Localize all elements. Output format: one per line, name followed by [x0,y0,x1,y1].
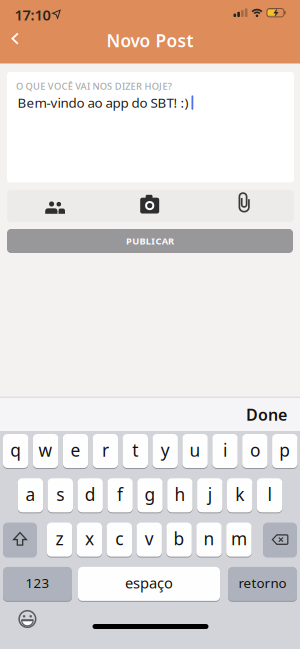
button[interactable]: v [136,522,162,557]
button[interactable]: Delete [263,522,297,557]
button[interactable]: b [166,522,192,557]
button[interactable]: m [226,522,252,557]
staticText: u [190,438,201,461]
button[interactable]: y [152,433,178,468]
button[interactable]: z [47,522,72,557]
staticText: Done [246,404,287,425]
button[interactable]: w [33,433,58,468]
staticText: h [174,483,185,506]
staticText: l [268,483,272,506]
button[interactable]: espaço [78,566,220,601]
staticText: O QUE VOCÊ VAI NOS DIZER HOJE? [16,80,172,92]
staticText: m [231,527,247,550]
staticText: t [132,438,138,461]
staticText: q [10,438,21,461]
button[interactable]: k [227,478,252,513]
button[interactable]: l [257,478,282,513]
button[interactable]: Anexar arquivo [215,190,275,222]
staticText: b [174,527,185,550]
button[interactable]: Câmera [120,190,180,222]
staticText: z [55,527,63,550]
staticText: k [235,483,244,506]
button[interactable]: u [182,433,208,468]
staticText: s [56,483,64,506]
staticText: Novo Post [106,29,193,52]
button[interactable]: d [77,478,103,513]
staticText: r [102,438,109,461]
button[interactable]: p [272,433,297,468]
button[interactable]: j [197,478,222,513]
button[interactable]: s [48,478,73,513]
button[interactable]: retorno [228,566,297,601]
staticText: PUBLICAR [126,235,174,247]
staticText: v [145,527,154,550]
staticText: 17:10 [14,5,50,25]
staticText: f [117,483,123,506]
staticText: x [85,527,94,550]
staticText: i [223,438,227,461]
button[interactable]: t [123,433,148,468]
button[interactable]: g [137,478,163,513]
button[interactable]: f [107,478,133,513]
staticText: c [115,527,123,550]
button[interactable]: e [63,433,88,468]
button[interactable]: a [18,478,43,513]
staticText: Bem-vindo ao app do SBT! :) [17,94,188,111]
staticText: n [203,527,214,550]
staticText: g [144,483,155,506]
button[interactable]: q [3,433,28,468]
button[interactable]: c [107,522,132,557]
staticText: w [39,438,53,461]
button[interactable]: 123 [3,566,72,601]
button[interactable]: r [93,433,118,468]
staticText: 123 [25,574,49,592]
button[interactable]: h [167,478,193,513]
staticText: j [208,483,212,506]
staticText: a [25,483,35,506]
staticText: espaço [125,573,173,593]
button[interactable]: i [212,433,238,468]
button[interactable]: o [242,433,268,468]
staticText: retorno [238,574,286,592]
staticText: d [85,483,96,506]
staticText: p [279,438,290,461]
button[interactable]: Emoji [12,604,42,634]
staticText: o [250,438,260,461]
staticText: y [161,438,170,461]
button[interactable]: PUBLICAR [7,229,293,253]
button[interactable]: Done [227,398,287,431]
staticText: e [70,438,80,461]
button[interactable]: Shift [3,522,37,557]
button[interactable]: n [196,522,222,557]
button[interactable]: Marcar pessoas [25,190,85,222]
button[interactable]: x [77,522,102,557]
button[interactable]: Back [0,23,30,53]
